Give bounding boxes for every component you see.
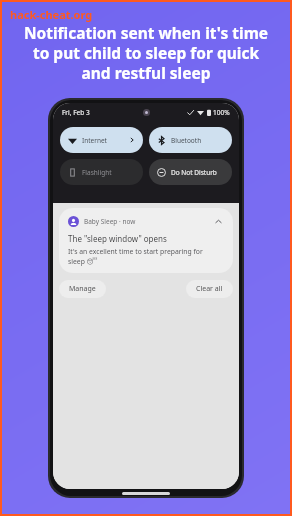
staticText: Internet — [82, 136, 107, 145]
staticText: Clear all — [196, 284, 223, 294]
button[interactable]: Manage — [59, 280, 106, 298]
staticText: It's an excellent time to start preparin… — [68, 247, 203, 266]
staticText: hack-cheat.org — [10, 7, 93, 22]
button[interactable]: Flashlight — [60, 159, 143, 185]
staticText: Fri, Feb 3 — [62, 108, 90, 117]
staticText: The "sleep window" opens — [68, 233, 167, 244]
staticText: Manage — [69, 284, 96, 294]
staticText: 100% — [213, 108, 230, 117]
button[interactable]: Baby Sleep · now — [59, 208, 233, 273]
staticText: Bluetooth — [171, 136, 202, 145]
staticText: Flashlight — [82, 168, 112, 177]
staticText: Do Not Disturb — [171, 168, 217, 177]
button[interactable]: Internet — [60, 127, 143, 153]
staticText: Baby Sleep · now — [84, 217, 136, 226]
button[interactable]: Collapse notification — [212, 215, 224, 227]
button[interactable]: Do Not Disturb — [149, 159, 232, 185]
button[interactable]: Clear all — [186, 280, 233, 298]
staticText: Notification sent when it's time to put … — [8, 22, 284, 83]
button[interactable]: Bluetooth — [149, 127, 232, 153]
